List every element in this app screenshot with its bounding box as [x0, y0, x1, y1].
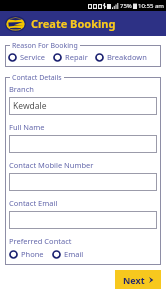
staticText: Phone [21, 249, 44, 259]
button[interactable]: Service [8, 52, 46, 62]
button[interactable]: Email [52, 249, 84, 259]
staticText: Next [123, 274, 145, 286]
staticText: Branch [9, 84, 34, 94]
button[interactable]: Kewdale [9, 97, 157, 115]
staticText: 75% [120, 2, 132, 10]
staticText: Reason For Booking [12, 41, 78, 51]
staticText: Contact Email [9, 198, 58, 208]
staticText: Repair [65, 52, 88, 62]
staticText: 10:55 am [138, 2, 164, 10]
staticText: Service [20, 52, 46, 62]
staticText: Contact Details [12, 73, 62, 83]
staticText: Contact Mobile Number [9, 160, 94, 170]
staticText: Kewdale [13, 100, 47, 112]
button[interactable] [9, 211, 157, 229]
staticText: Email [64, 249, 84, 259]
button[interactable]: Phone [9, 249, 44, 259]
button[interactable] [9, 135, 157, 153]
button[interactable]: Repair [53, 52, 88, 62]
staticText: Preferred Contact [9, 236, 72, 246]
button[interactable] [9, 173, 157, 191]
button[interactable]: Next [115, 270, 161, 289]
button[interactable]: Breakdown [95, 52, 147, 62]
staticText: Breakdown [107, 52, 147, 62]
staticText: Create Booking [31, 16, 116, 31]
staticText: Full Name [9, 122, 45, 132]
